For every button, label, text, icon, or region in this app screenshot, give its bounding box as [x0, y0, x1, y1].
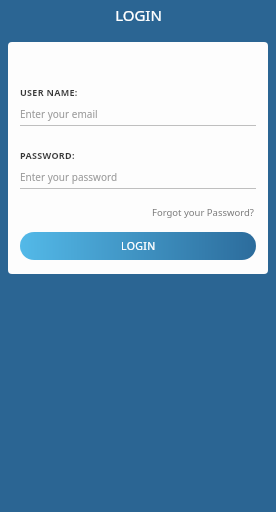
button[interactable]: Enter your email	[20, 107, 256, 126]
staticText: Forgot your Password?	[152, 206, 254, 219]
button[interactable]: LOGIN	[20, 232, 256, 260]
button[interactable]: Forgot your Password?	[150, 204, 256, 221]
staticText: LOGIN	[121, 239, 156, 253]
staticText: Enter your password	[20, 170, 118, 184]
staticText: PASSWORD:	[20, 149, 75, 161]
button[interactable]: Enter your password	[20, 170, 256, 189]
staticText: Enter your email	[20, 107, 98, 121]
staticText: LOGIN	[115, 5, 162, 25]
staticText: USER NAME:	[20, 86, 78, 98]
